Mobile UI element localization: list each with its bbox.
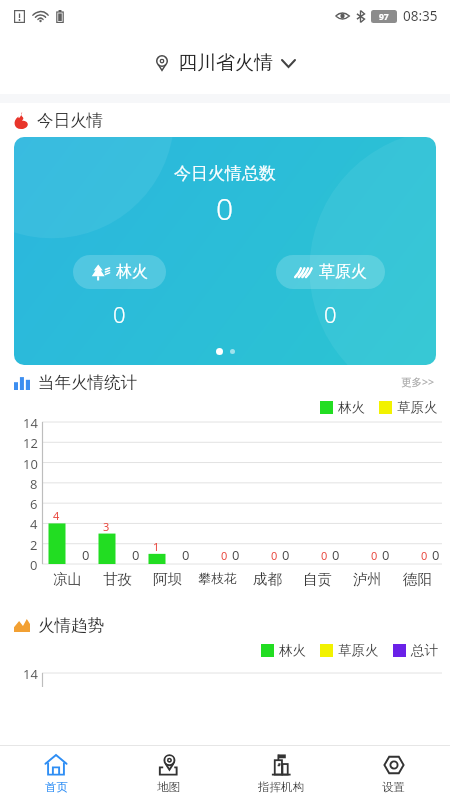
- staticText: 1: [153, 539, 160, 554]
- button[interactable]: 今日火情总数: [14, 137, 436, 365]
- staticText: 四川省火情: [178, 51, 273, 75]
- staticText: 0: [221, 548, 228, 563]
- staticText: 0: [421, 548, 428, 563]
- staticText: 德阳: [403, 570, 432, 588]
- staticText: 草原火: [319, 262, 367, 282]
- staticText: 甘孜: [103, 570, 132, 588]
- staticText: 8: [30, 475, 38, 491]
- staticText: 0: [132, 546, 140, 564]
- staticText: 草原火: [338, 642, 379, 659]
- staticText: 0: [182, 546, 190, 564]
- staticText: 0: [113, 299, 126, 329]
- staticText: 0: [30, 556, 38, 572]
- staticText: 6: [30, 495, 38, 511]
- staticText: 10: [23, 455, 38, 471]
- staticText: 草原火: [397, 399, 438, 416]
- staticText: 当年火情统计: [38, 372, 137, 393]
- staticText: 0: [282, 546, 290, 564]
- staticText: 地图: [157, 780, 180, 794]
- other: 设置: [382, 753, 406, 777]
- staticText: 自贡: [303, 570, 332, 588]
- other: 首页: [44, 753, 68, 777]
- staticText: 今日火情总数: [174, 163, 276, 184]
- staticText: 设置: [382, 780, 405, 794]
- button[interactable]: 设置: [337, 746, 450, 800]
- button[interactable]: 首页: [0, 746, 112, 800]
- staticText: 指挥机构: [258, 780, 304, 794]
- staticText: 14: [23, 665, 38, 683]
- staticText: 0: [216, 188, 234, 229]
- staticText: 成都: [253, 570, 282, 588]
- staticText: 0: [332, 546, 340, 564]
- staticText: 4: [53, 508, 60, 523]
- staticText: 泸州: [353, 570, 382, 588]
- staticText: 更多>>: [401, 375, 435, 389]
- staticText: 4: [30, 515, 38, 531]
- staticText: 0: [321, 548, 328, 563]
- staticText: 今日火情: [37, 110, 103, 131]
- staticText: 首页: [45, 780, 68, 794]
- staticText: 林火: [279, 642, 306, 659]
- staticText: 2: [30, 536, 38, 552]
- staticText: 0: [232, 546, 240, 564]
- button[interactable]: 地图: [112, 746, 224, 800]
- staticText: 总计: [411, 642, 438, 659]
- staticText: 0: [432, 546, 440, 564]
- staticText: 攀枝花: [198, 570, 237, 586]
- staticText: 林火: [116, 262, 148, 282]
- button[interactable]: 四川省火情: [146, 45, 304, 81]
- other: 地图: [156, 753, 180, 777]
- staticText: 97: [379, 11, 389, 23]
- button[interactable]: 指挥机构: [224, 746, 337, 800]
- staticText: 08:35: [403, 7, 438, 25]
- staticText: 0: [271, 548, 278, 563]
- staticText: 0: [82, 546, 90, 564]
- button[interactable]: 草原火: [276, 255, 385, 289]
- button[interactable]: 更多>>: [396, 371, 440, 393]
- staticText: 火情趋势: [38, 615, 104, 636]
- staticText: 阿坝: [153, 570, 182, 588]
- staticText: 3: [103, 519, 110, 534]
- staticText: 林火: [338, 399, 365, 416]
- staticText: 凉山: [53, 570, 82, 588]
- staticText: 0: [371, 548, 378, 563]
- button[interactable]: 林火: [73, 255, 166, 289]
- other: 指挥机构: [269, 753, 293, 777]
- staticText: 12: [23, 434, 38, 450]
- staticText: 14: [23, 414, 38, 430]
- staticText: 0: [382, 546, 390, 564]
- staticText: 0: [324, 299, 337, 329]
